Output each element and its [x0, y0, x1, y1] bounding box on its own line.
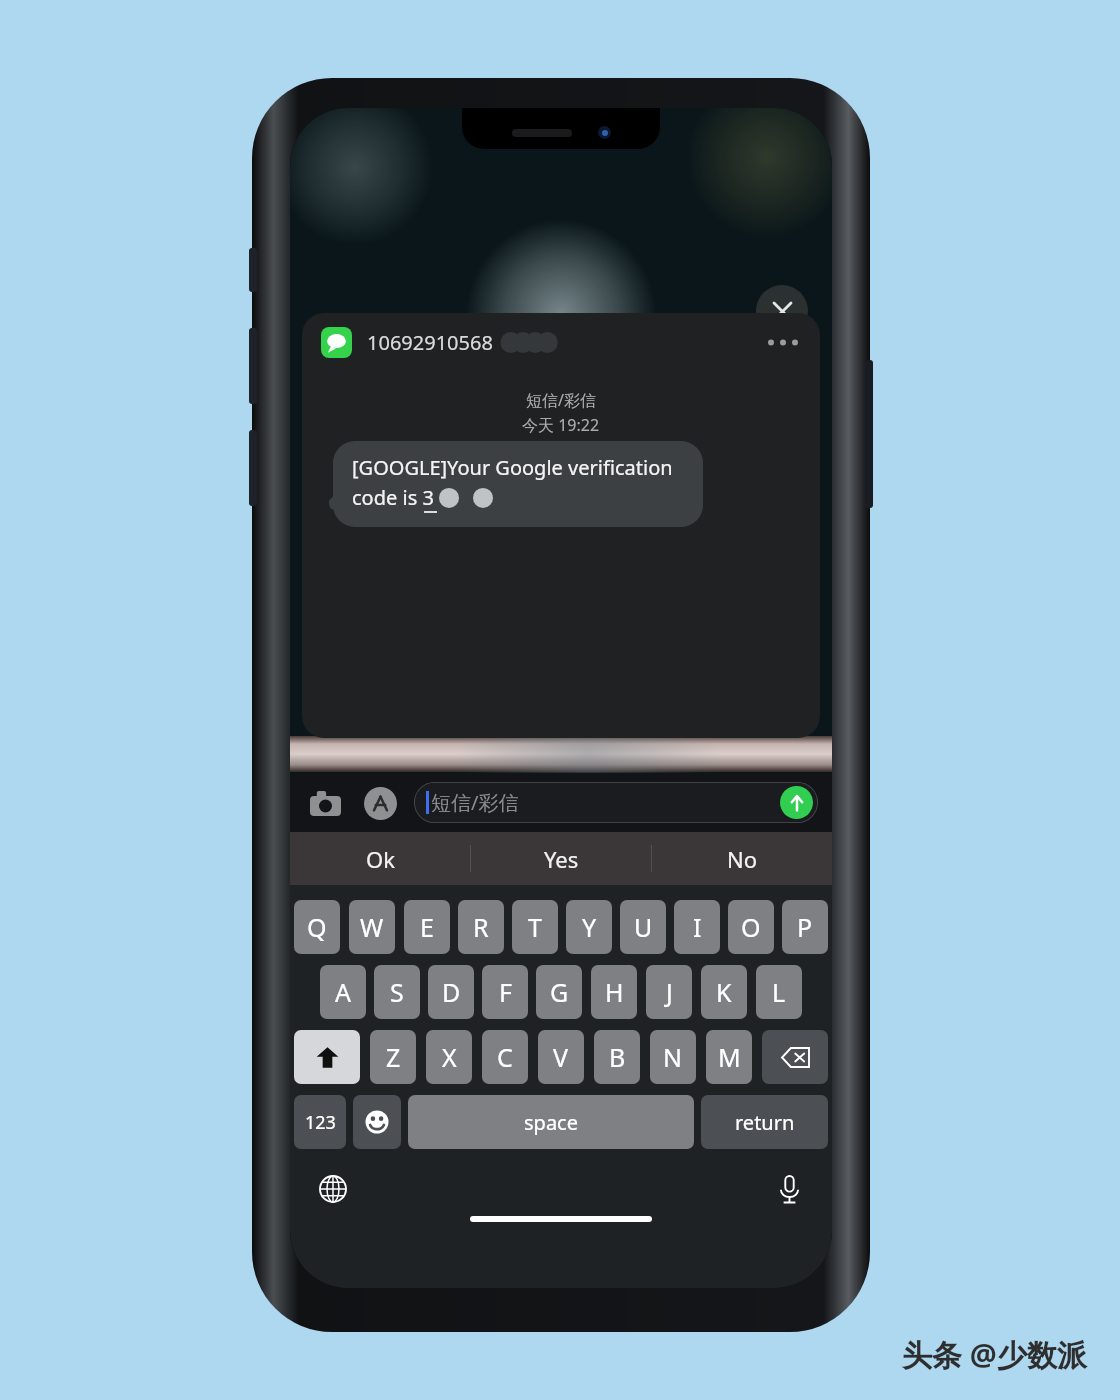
button[interactable]: Send	[780, 786, 813, 819]
button[interactable]: Yes	[471, 832, 651, 885]
staticText: 头条 @少数派	[902, 1334, 1087, 1375]
button[interactable]: H	[591, 965, 637, 1019]
staticText: E	[420, 910, 434, 944]
button[interactable]: N	[650, 1030, 696, 1084]
button[interactable]: A	[320, 965, 366, 1019]
button[interactable]: Shift	[294, 1030, 360, 1084]
button[interactable]: O	[728, 900, 774, 954]
staticText: space	[524, 1109, 578, 1136]
button[interactable]: B	[594, 1030, 640, 1084]
staticText: Yes	[544, 844, 579, 874]
staticText: R	[473, 910, 489, 944]
button[interactable]: M	[706, 1030, 752, 1084]
button[interactable]: Dictation	[768, 1168, 810, 1210]
button[interactable]: G	[536, 965, 582, 1019]
staticText: S	[390, 975, 404, 1009]
button[interactable]: space	[408, 1095, 694, 1149]
staticText: I	[693, 910, 702, 944]
staticText: return	[735, 1109, 795, 1136]
staticText: M	[718, 1040, 741, 1074]
button[interactable]: K	[701, 965, 747, 1019]
button[interactable]: P	[782, 900, 828, 954]
button[interactable]: W	[349, 900, 395, 954]
button[interactable]: Y	[566, 900, 612, 954]
button[interactable]: App Store	[359, 782, 401, 824]
button[interactable]: I	[674, 900, 720, 954]
button[interactable]: Q	[294, 900, 340, 954]
button[interactable]: C	[482, 1030, 528, 1084]
button[interactable]: U	[620, 900, 666, 954]
button[interactable]: L	[756, 965, 802, 1019]
button[interactable]: J	[646, 965, 692, 1019]
button[interactable]: 短信/彩信	[414, 782, 818, 823]
button[interactable]: Camera	[304, 782, 346, 824]
button[interactable]: E	[404, 900, 450, 954]
button[interactable]: Backspace	[762, 1030, 828, 1084]
staticText: T	[528, 910, 542, 944]
button[interactable]: T	[512, 900, 558, 954]
button[interactable]: No	[652, 832, 832, 885]
staticText: Ok	[366, 844, 395, 874]
button[interactable]: X	[426, 1030, 472, 1084]
staticText: 短信/彩信	[526, 389, 596, 411]
button[interactable]: 10692910568	[302, 313, 820, 738]
staticText: C	[497, 1040, 513, 1074]
staticText: 短信/彩信	[431, 789, 519, 816]
button[interactable]: Change keyboard	[312, 1168, 354, 1210]
button[interactable]: V	[538, 1030, 584, 1084]
button[interactable]: Close	[756, 285, 808, 337]
button[interactable]: 123	[294, 1095, 346, 1149]
button[interactable]: Emoji	[353, 1095, 401, 1149]
button[interactable]: Ok	[290, 832, 470, 885]
staticText: 今天 19:22	[522, 414, 600, 436]
staticText: 10692910568	[367, 329, 493, 356]
staticText: 123	[305, 1110, 336, 1135]
button[interactable]: D	[428, 965, 474, 1019]
staticText: O	[741, 910, 761, 944]
staticText: D	[442, 975, 461, 1009]
staticText: Y	[582, 910, 597, 944]
button[interactable]: More options	[765, 326, 801, 358]
staticText: [GOOGLE]Your Google verification	[352, 454, 673, 481]
staticText: A	[335, 975, 351, 1009]
button[interactable]: F	[482, 965, 528, 1019]
staticText: N	[663, 1040, 683, 1074]
staticText: F	[499, 975, 512, 1009]
staticText: No	[727, 844, 758, 874]
staticText: Q	[307, 910, 327, 944]
button[interactable]: R	[458, 900, 504, 954]
staticText: code is 3	[352, 484, 434, 511]
staticText: X	[442, 1040, 457, 1074]
staticText: K	[716, 975, 732, 1009]
staticText: V	[553, 1040, 569, 1074]
staticText: H	[605, 975, 624, 1009]
staticText: J	[666, 975, 673, 1009]
staticText: Z	[386, 1040, 401, 1074]
button[interactable]: Z	[370, 1030, 416, 1084]
staticText: G	[550, 975, 569, 1009]
staticText: W	[360, 910, 384, 944]
staticText: B	[609, 1040, 626, 1074]
button[interactable]: return	[701, 1095, 828, 1149]
button[interactable]: S	[374, 965, 420, 1019]
staticText: U	[634, 910, 653, 944]
staticText: L	[772, 975, 786, 1009]
staticText: P	[797, 910, 813, 944]
